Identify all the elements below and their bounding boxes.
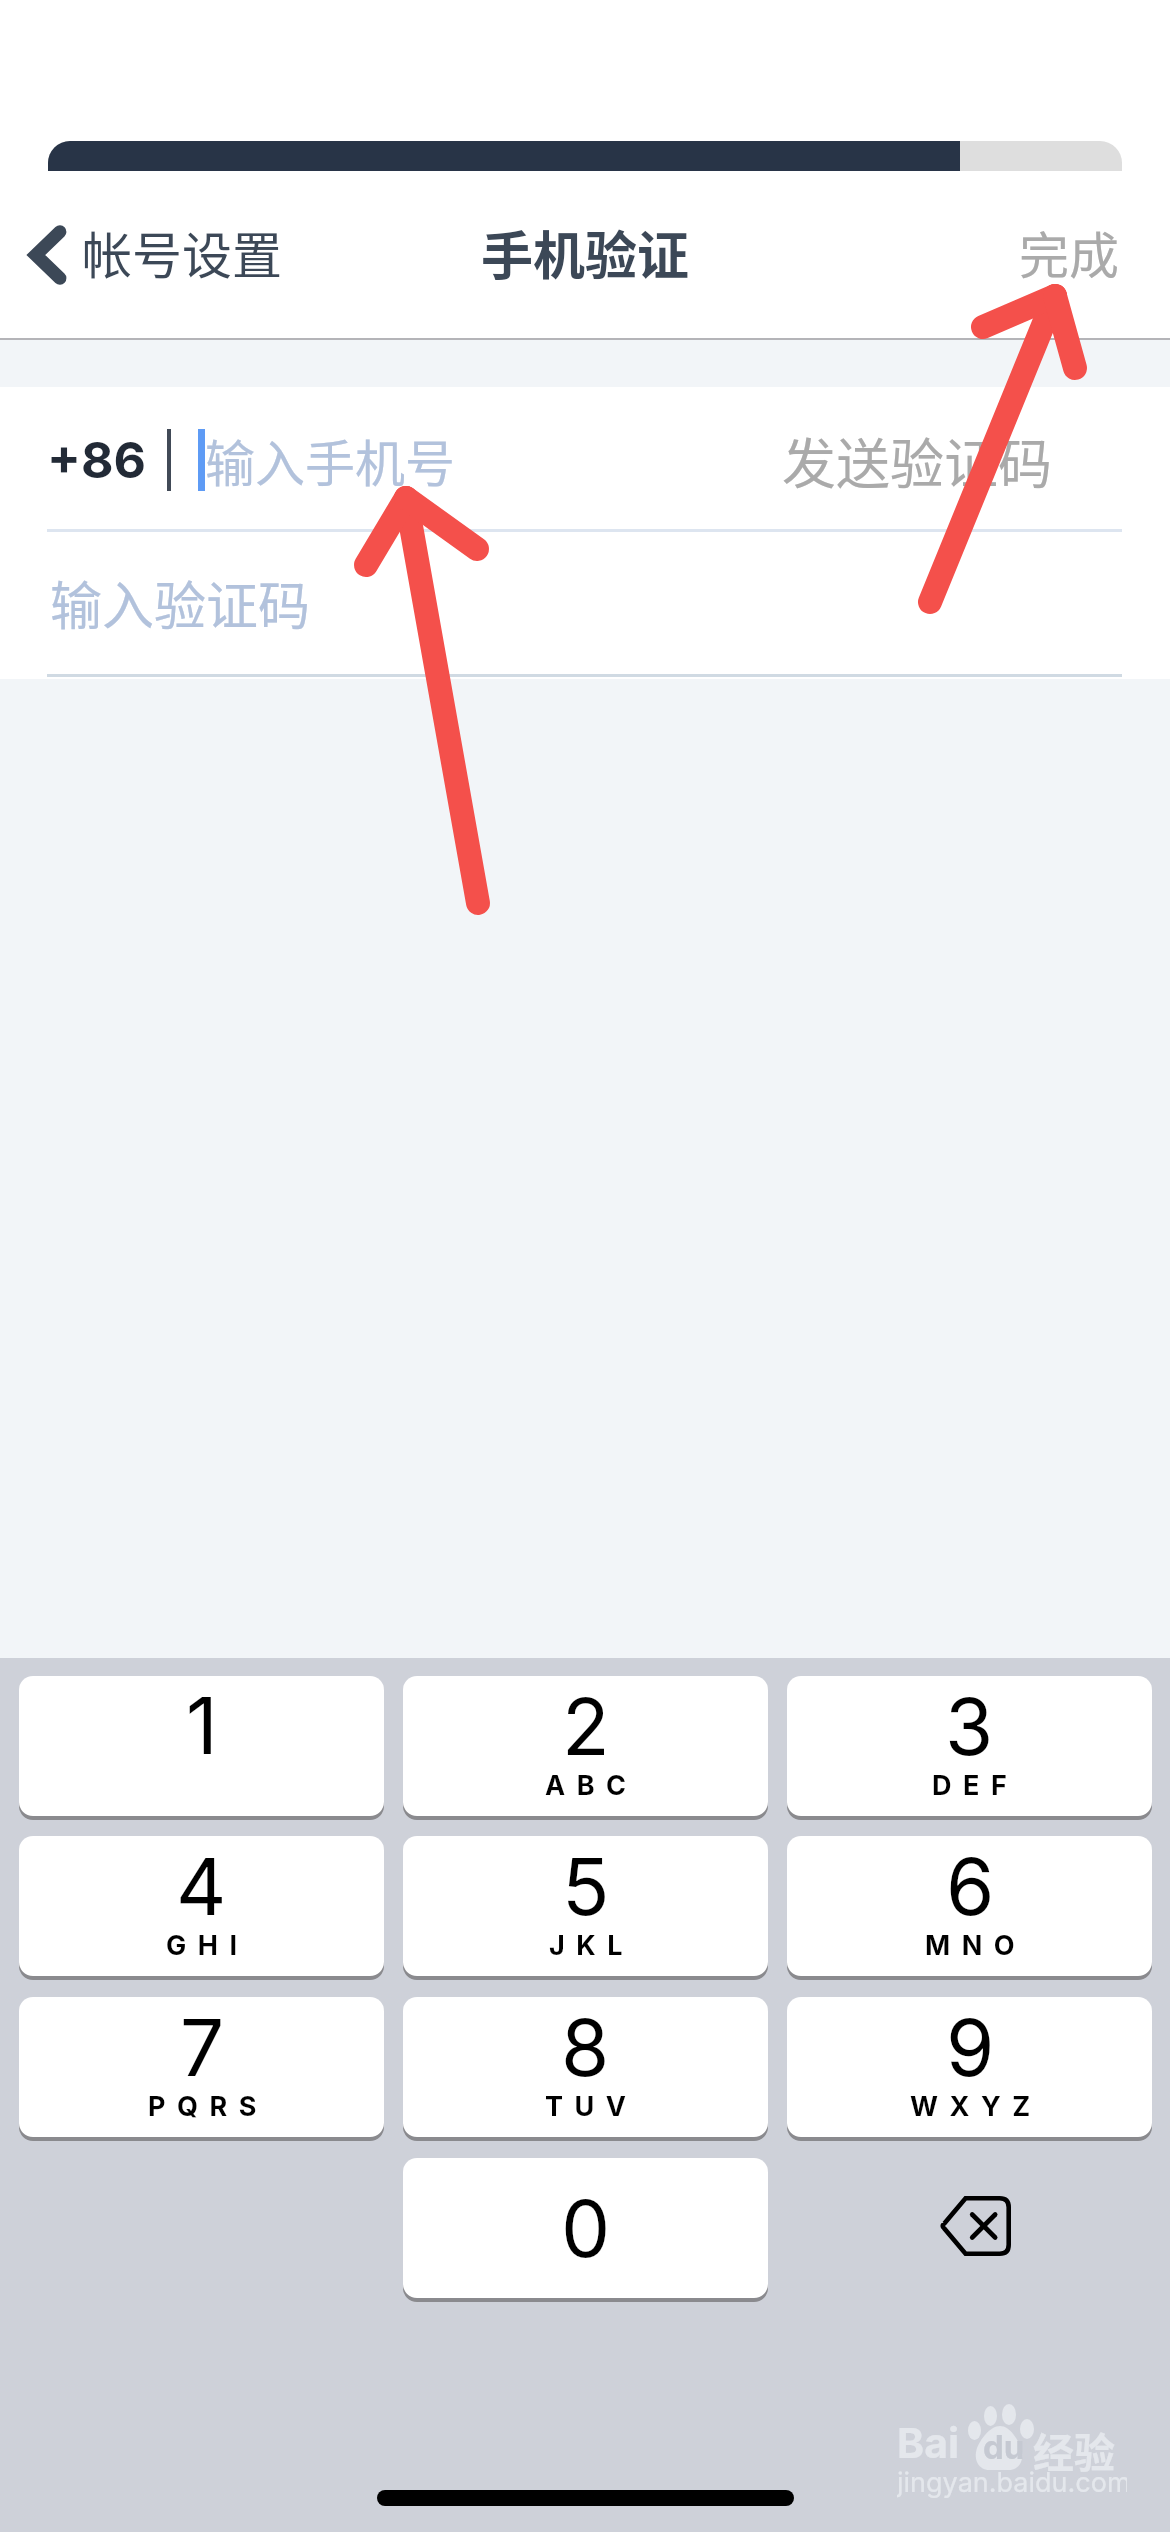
button[interactable]: 8: [403, 1997, 768, 2137]
staticText: 5: [562, 1839, 610, 1933]
staticText: GHI: [166, 1929, 249, 1962]
staticText: TUV: [545, 2090, 638, 2123]
staticText: MNO: [925, 1929, 1027, 1962]
button[interactable]: Back: [20, 190, 288, 314]
button[interactable]: Delete: [787, 2158, 1152, 2298]
staticText: Bai: [897, 2418, 960, 2468]
staticText: 0: [561, 2181, 611, 2275]
staticText: WXYZ: [910, 2090, 1042, 2123]
staticText: 经验: [1033, 2420, 1115, 2479]
staticText: 4: [176, 1839, 227, 1933]
button[interactable]: 7: [19, 1997, 384, 2137]
staticText: 输入验证码: [50, 565, 311, 640]
staticText: +86: [47, 430, 146, 490]
staticText: 完成: [1019, 216, 1119, 288]
button[interactable]: +86: [47, 396, 146, 524]
button[interactable]: 6: [787, 1836, 1152, 1976]
button[interactable]: 0: [403, 2158, 768, 2298]
button[interactable]: 完成: [1011, 194, 1127, 310]
staticText: DEF: [932, 1769, 1019, 1802]
button[interactable]: 输入验证码: [50, 531, 1122, 674]
staticText: ABC: [545, 1769, 638, 1802]
staticText: 6: [946, 1839, 995, 1933]
button[interactable]: 2: [403, 1676, 768, 1816]
staticText: PQRS: [148, 2090, 268, 2123]
staticText: 3: [945, 1679, 994, 1773]
button[interactable]: 5: [403, 1836, 768, 1976]
staticText: du: [983, 2427, 1025, 2467]
other: Back: [30, 226, 64, 284]
button[interactable]: 发送验证码: [782, 391, 1052, 529]
staticText: jingyan.baidu.com: [897, 2466, 1127, 2499]
staticText: 输入手机号: [205, 424, 455, 496]
staticText: 9: [946, 2000, 995, 2094]
staticText: 发送验证码: [782, 421, 1052, 499]
button[interactable]: 3: [787, 1676, 1152, 1816]
button[interactable]: 输入手机号: [205, 390, 782, 530]
staticText: 2: [562, 1679, 610, 1773]
staticText: 1: [186, 1678, 218, 1772]
staticText: 7: [180, 2000, 225, 2094]
staticText: 8: [561, 2000, 610, 2094]
staticText: JKL: [549, 1929, 634, 1962]
staticText: 帐号设置: [82, 216, 282, 288]
button[interactable]: 9: [787, 1997, 1152, 2137]
button[interactable]: 4: [19, 1836, 384, 1976]
button[interactable]: 1: [19, 1676, 384, 1816]
staticText: 手机验证: [481, 215, 690, 290]
